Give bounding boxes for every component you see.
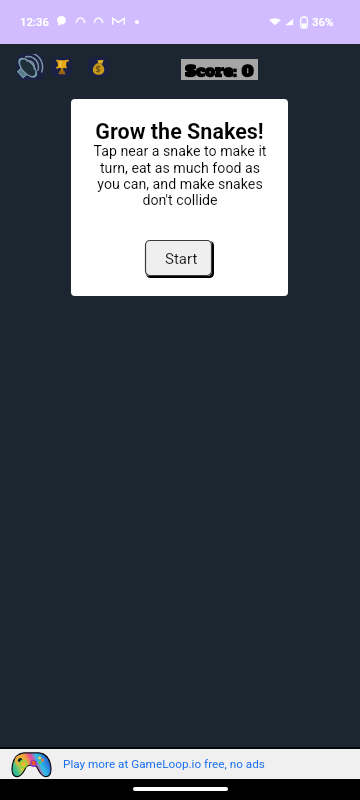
staticText: 36% [312,15,334,28]
button[interactable]: Start [145,240,214,278]
staticText: Tap near a snake to make it turn, eat as… [87,143,273,208]
staticText: Grow the Snakes! [95,119,264,144]
staticText: Score: 0 [185,60,254,81]
staticText: 12:36 [20,15,49,28]
button[interactable]: Sound [17,54,44,80]
button[interactable]: Score: 0 [181,59,258,80]
button[interactable]: Leaderboard [51,57,72,77]
staticText: Start [165,250,198,268]
button[interactable]: Coins [88,57,109,77]
staticText: Play more at GameLoop.io free, no ads [63,757,265,771]
button[interactable]: Play more at GameLoop.io free, no ads [0,749,360,779]
